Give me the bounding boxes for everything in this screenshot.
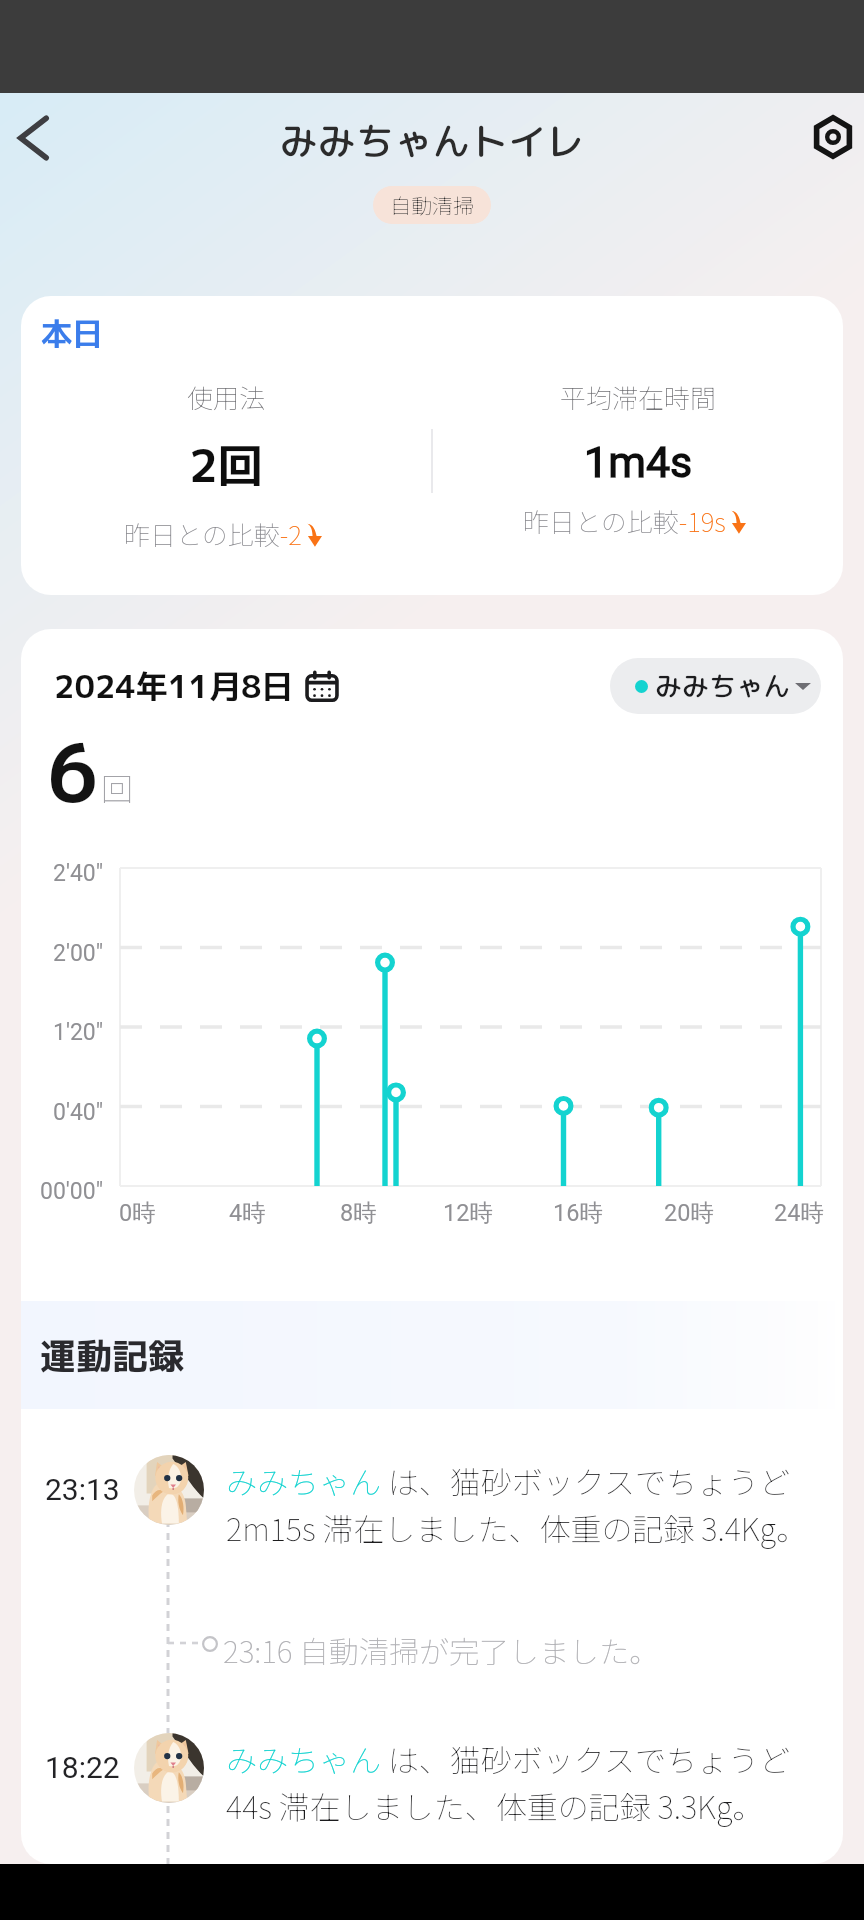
staticText: 23:13 bbox=[45, 1472, 120, 1507]
staticText: 8時 bbox=[340, 1198, 377, 1228]
staticText: 24時 bbox=[774, 1198, 824, 1228]
staticText: 4時 bbox=[229, 1198, 266, 1228]
staticText: 1'20" bbox=[53, 1019, 104, 1046]
staticText: 2'00" bbox=[53, 940, 104, 967]
staticText: 自動清掃 bbox=[390, 190, 474, 220]
staticText: みみちゃん は、猫砂ボックスでちょうど 44s 滞在しました、体重の記録 3.3… bbox=[226, 1736, 819, 1828]
button[interactable]: みみちゃん bbox=[610, 658, 821, 714]
staticText: 昨日との比較-2 bbox=[124, 515, 302, 553]
staticText: 20時 bbox=[664, 1198, 714, 1228]
staticText: 2回 bbox=[189, 434, 263, 497]
staticText: みみちゃんトイレ bbox=[280, 114, 585, 167]
staticText: 運動記録 bbox=[40, 1330, 185, 1380]
staticText: 本日 bbox=[41, 312, 103, 355]
button[interactable]: Back bbox=[1, 106, 65, 170]
staticText: 1m4s bbox=[584, 437, 693, 487]
staticText: みみちゃん は、猫砂ボックスでちょうど 2m15s 滞在しました、体重の記録 3… bbox=[226, 1458, 819, 1550]
staticText: 0'40" bbox=[53, 1099, 104, 1126]
staticText: 12時 bbox=[443, 1198, 493, 1228]
button[interactable]: Settings bbox=[806, 110, 860, 164]
staticText: 00'00" bbox=[40, 1178, 104, 1205]
staticText: 18:22 bbox=[45, 1750, 120, 1785]
staticText: みみちゃん bbox=[655, 667, 790, 705]
staticText: 昨日との比較-19s bbox=[523, 502, 726, 540]
staticText: 0時 bbox=[119, 1198, 156, 1228]
staticText: 6 bbox=[47, 716, 99, 828]
staticText: 2'40" bbox=[53, 860, 104, 887]
staticText: 23:16 自動清掃が完了しました。 bbox=[223, 1628, 660, 1671]
staticText: 平均滞在時間 bbox=[560, 378, 717, 416]
staticText: 使用法 bbox=[187, 378, 266, 416]
staticText: 回 bbox=[101, 764, 134, 810]
staticText: 2024年11月8日 bbox=[54, 664, 294, 709]
staticText: 16時 bbox=[553, 1198, 603, 1228]
